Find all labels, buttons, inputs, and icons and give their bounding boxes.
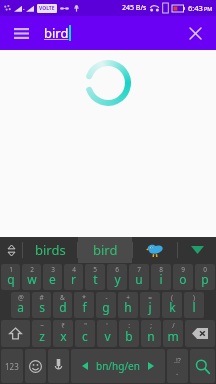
button[interactable]: ': [97, 320, 117, 347]
staticText: 0: [203, 265, 207, 274]
button[interactable]: Emoji: [25, 349, 46, 383]
staticText: s: [39, 299, 45, 315]
staticText: -: [105, 293, 108, 302]
staticText: 4: [72, 265, 76, 274]
button[interactable]: birds: [23, 237, 77, 263]
staticText: 123: [5, 361, 19, 372]
staticText: 7: [137, 265, 141, 274]
staticText: 6: [115, 265, 119, 274]
button[interactable]: 5: [85, 264, 105, 290]
button[interactable]: :: [119, 320, 139, 347]
button[interactable]: Voice input: [48, 349, 69, 383]
staticText: v: [104, 328, 111, 344]
staticText: ": [84, 321, 87, 330]
button[interactable]: 123: [1, 349, 23, 383]
button[interactable]: ;: [141, 320, 161, 347]
staticText: .!?: [174, 356, 181, 366]
button[interactable]: (: [162, 292, 182, 318]
staticText: m: [167, 328, 179, 344]
staticText: o: [179, 271, 187, 287]
staticText: c: [82, 328, 88, 344]
button[interactable]: More: [178, 237, 216, 263]
button[interactable]: 7: [129, 264, 149, 290]
staticText: VOLTE: [39, 5, 55, 12]
button[interactable]: Search: [190, 349, 215, 383]
button[interactable]: 4: [64, 264, 83, 290]
staticText: #: [39, 293, 44, 302]
staticText: g: [102, 299, 110, 315]
staticText: i: [159, 271, 163, 287]
staticText: 245 B/s: [122, 3, 147, 13]
staticText: ;: [150, 321, 152, 330]
button[interactable]: *: [74, 292, 94, 318]
staticText: t: [93, 271, 98, 287]
staticText: l: [192, 299, 196, 315]
button[interactable]: 3: [43, 264, 62, 290]
button[interactable]: Clear: [182, 20, 208, 46]
staticText: a: [17, 299, 24, 315]
staticText: /: [172, 321, 175, 330]
button[interactable]: 9: [173, 264, 193, 290]
staticText: .: [23, 4, 25, 12]
button[interactable]: Menu: [8, 20, 34, 46]
staticText: r: [71, 271, 76, 287]
staticText: bird: [44, 24, 69, 42]
staticText: y: [114, 271, 121, 287]
staticText: w: [27, 271, 37, 287]
staticText: .: [176, 366, 179, 377]
button[interactable]: .!?: [167, 349, 188, 383]
button[interactable]: ~: [32, 320, 51, 347]
staticText: 9: [181, 265, 185, 274]
staticText: 8: [159, 265, 163, 274]
button[interactable]: ": [75, 320, 95, 347]
staticText: ₹: [61, 321, 65, 330]
button[interactable]: 0: [195, 264, 215, 290]
button[interactable]: 1: [1, 264, 20, 290]
staticText: ': [106, 321, 108, 330]
staticText: (: [171, 293, 173, 302]
button[interactable]: /: [163, 320, 183, 347]
staticText: 1: [9, 265, 13, 274]
staticText: z: [39, 328, 45, 344]
button[interactable]: 2: [22, 264, 41, 290]
button[interactable]: ₹: [53, 320, 73, 347]
button[interactable]: Twitter suggestion: [133, 237, 177, 263]
button[interactable]: &: [53, 292, 72, 318]
staticText: k: [169, 299, 176, 315]
button[interactable]: bird: [78, 237, 132, 263]
staticText: f: [82, 299, 87, 315]
staticText: 2: [30, 265, 34, 274]
button[interactable]: [1, 320, 30, 347]
button[interactable]: Backspace: [185, 320, 215, 347]
staticText: b: [125, 328, 133, 344]
staticText: :: [128, 321, 130, 330]
button[interactable]: =: [140, 292, 160, 318]
staticText: &: [60, 293, 65, 302]
staticText: @: [18, 293, 24, 302]
staticText: bird: [93, 241, 118, 259]
staticText: bn/hg/en: [96, 359, 140, 373]
button[interactable]: 8: [151, 264, 171, 290]
staticText: 6:43: [188, 3, 203, 13]
button[interactable]: @: [11, 292, 30, 318]
staticText: =: [148, 293, 152, 302]
staticText: birds: [35, 241, 66, 259]
staticText: p: [201, 271, 209, 287]
staticText: j: [148, 299, 152, 315]
staticText: 3: [51, 265, 55, 274]
staticText: x: [60, 328, 67, 344]
button[interactable]: Expand suggestions: [0, 237, 22, 263]
button[interactable]: 6: [107, 264, 127, 290]
staticText: u: [135, 271, 143, 287]
staticText: h: [124, 299, 132, 315]
staticText: PM: [204, 5, 213, 12]
button[interactable]: +: [118, 292, 138, 318]
button[interactable]: -: [96, 292, 116, 318]
staticText: 5: [93, 265, 97, 274]
staticText: q: [7, 271, 15, 287]
button[interactable]: ): [184, 292, 204, 318]
staticText: ~: [40, 321, 44, 330]
button[interactable]: bn/hg/en: [71, 349, 165, 383]
staticText: e: [49, 271, 56, 287]
button[interactable]: #: [32, 292, 51, 318]
